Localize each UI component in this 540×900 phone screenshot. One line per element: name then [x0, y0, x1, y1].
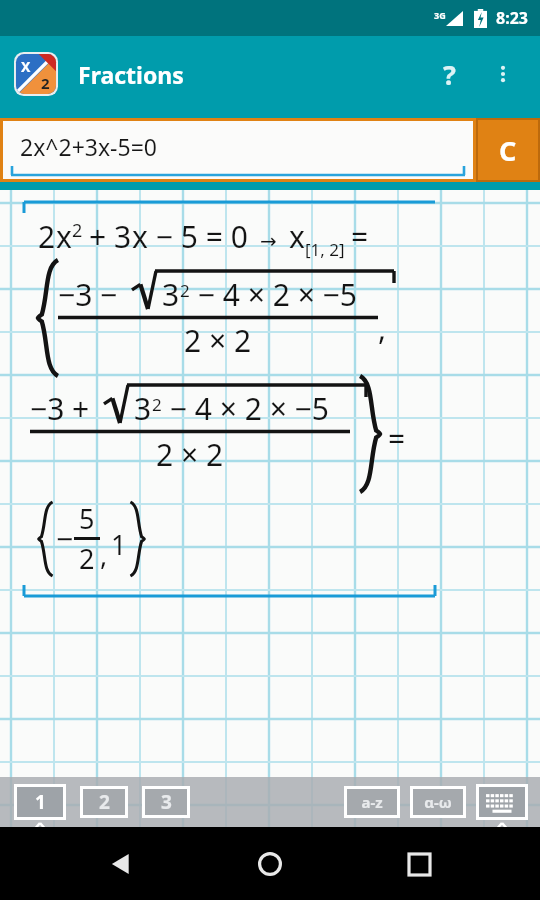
- button[interactable]: Help: [426, 51, 472, 97]
- staticText: x: [132, 216, 148, 257]
- staticText: X: [21, 57, 31, 76]
- staticText: 2 × 2: [184, 320, 252, 361]
- button[interactable]: α-ω: [413, 789, 463, 815]
- staticText: Fractions: [78, 59, 184, 90]
- staticText: − 5 = 0: [148, 216, 248, 257]
- button[interactable]: More options: [480, 51, 526, 97]
- staticText: 2: [72, 218, 83, 243]
- staticText: 1: [111, 526, 127, 563]
- staticText: =: [388, 418, 406, 459]
- staticText: C: [499, 132, 517, 169]
- staticText: 2: [152, 393, 162, 416]
- button[interactable]: Recent apps: [391, 836, 447, 892]
- button[interactable]: 2x^2+3x-5=0: [3, 121, 473, 179]
- button[interactable]: 1: [17, 787, 63, 817]
- staticText: 5: [79, 500, 95, 537]
- button[interactable]: 3: [145, 789, 187, 815]
- staticText: [1, 2]: [305, 238, 345, 261]
- button[interactable]: 2: [83, 789, 125, 815]
- staticText: 3G: [434, 9, 446, 21]
- staticText: ?: [443, 56, 456, 93]
- staticText: x: [56, 216, 72, 257]
- staticText: ,: [100, 536, 108, 573]
- staticText: a-z: [361, 792, 383, 812]
- staticText: 8:23: [496, 7, 528, 29]
- staticText: 1: [35, 789, 46, 815]
- button[interactable]: Home: [242, 836, 298, 892]
- button[interactable]: Back: [93, 836, 149, 892]
- button[interactable]: C: [478, 120, 538, 180]
- button[interactable]: Keyboard: [479, 787, 525, 817]
- staticText: 2: [38, 216, 56, 257]
- staticText: 3: [161, 789, 172, 815]
- staticText: α-ω: [424, 792, 452, 812]
- staticText: − 4 × 2 × −5: [190, 274, 357, 315]
- staticText: 2: [79, 540, 95, 577]
- staticText: 2x^2+3x-5=0: [20, 131, 157, 162]
- staticText: + 3: [89, 216, 132, 257]
- staticText: →: [260, 229, 277, 252]
- button[interactable]: a-z: [347, 789, 397, 815]
- staticText: − 4 × 2 × −5: [162, 388, 329, 429]
- staticText: 2 × 2: [156, 434, 224, 475]
- staticText: ,: [378, 308, 387, 349]
- staticText: −3 +: [30, 388, 98, 429]
- staticText: 3: [162, 274, 180, 315]
- staticText: 2: [180, 279, 190, 302]
- staticText: −: [56, 518, 74, 559]
- staticText: 2: [41, 73, 50, 93]
- button[interactable]: App icon: [14, 52, 58, 96]
- staticText: x: [289, 216, 305, 257]
- staticText: 2: [99, 789, 110, 815]
- staticText: −3 −: [58, 274, 126, 315]
- staticText: =: [351, 216, 369, 257]
- staticText: 3: [134, 388, 152, 429]
